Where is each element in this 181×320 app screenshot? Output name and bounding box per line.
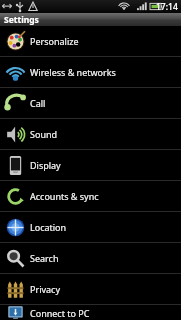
button[interactable]: Privacy xyxy=(0,274,181,305)
button[interactable]: Location xyxy=(0,212,181,243)
staticText: 17:14 xyxy=(156,1,178,13)
staticText: Location xyxy=(30,221,67,233)
button[interactable]: Accounts & sync xyxy=(0,181,181,212)
button[interactable]: Sound xyxy=(0,119,181,150)
staticText: Accounts & sync xyxy=(30,190,99,202)
button[interactable]: Search xyxy=(0,243,181,274)
staticText: Connect to PC xyxy=(30,307,90,319)
staticText: Privacy xyxy=(30,283,61,295)
staticText: Call xyxy=(30,97,46,109)
button[interactable]: Display xyxy=(0,150,181,181)
staticText: Sound xyxy=(30,128,58,140)
staticText: Settings xyxy=(4,14,39,26)
button[interactable]: Connect to PC xyxy=(0,305,181,320)
button[interactable]: Personalize xyxy=(0,26,181,57)
staticText: Search xyxy=(30,252,59,264)
staticText: Wireless & networks xyxy=(30,66,116,78)
staticText: Display xyxy=(30,159,61,171)
button[interactable]: Wireless & networks xyxy=(0,57,181,88)
button[interactable]: Call xyxy=(0,88,181,119)
staticText: Personalize xyxy=(30,35,79,47)
